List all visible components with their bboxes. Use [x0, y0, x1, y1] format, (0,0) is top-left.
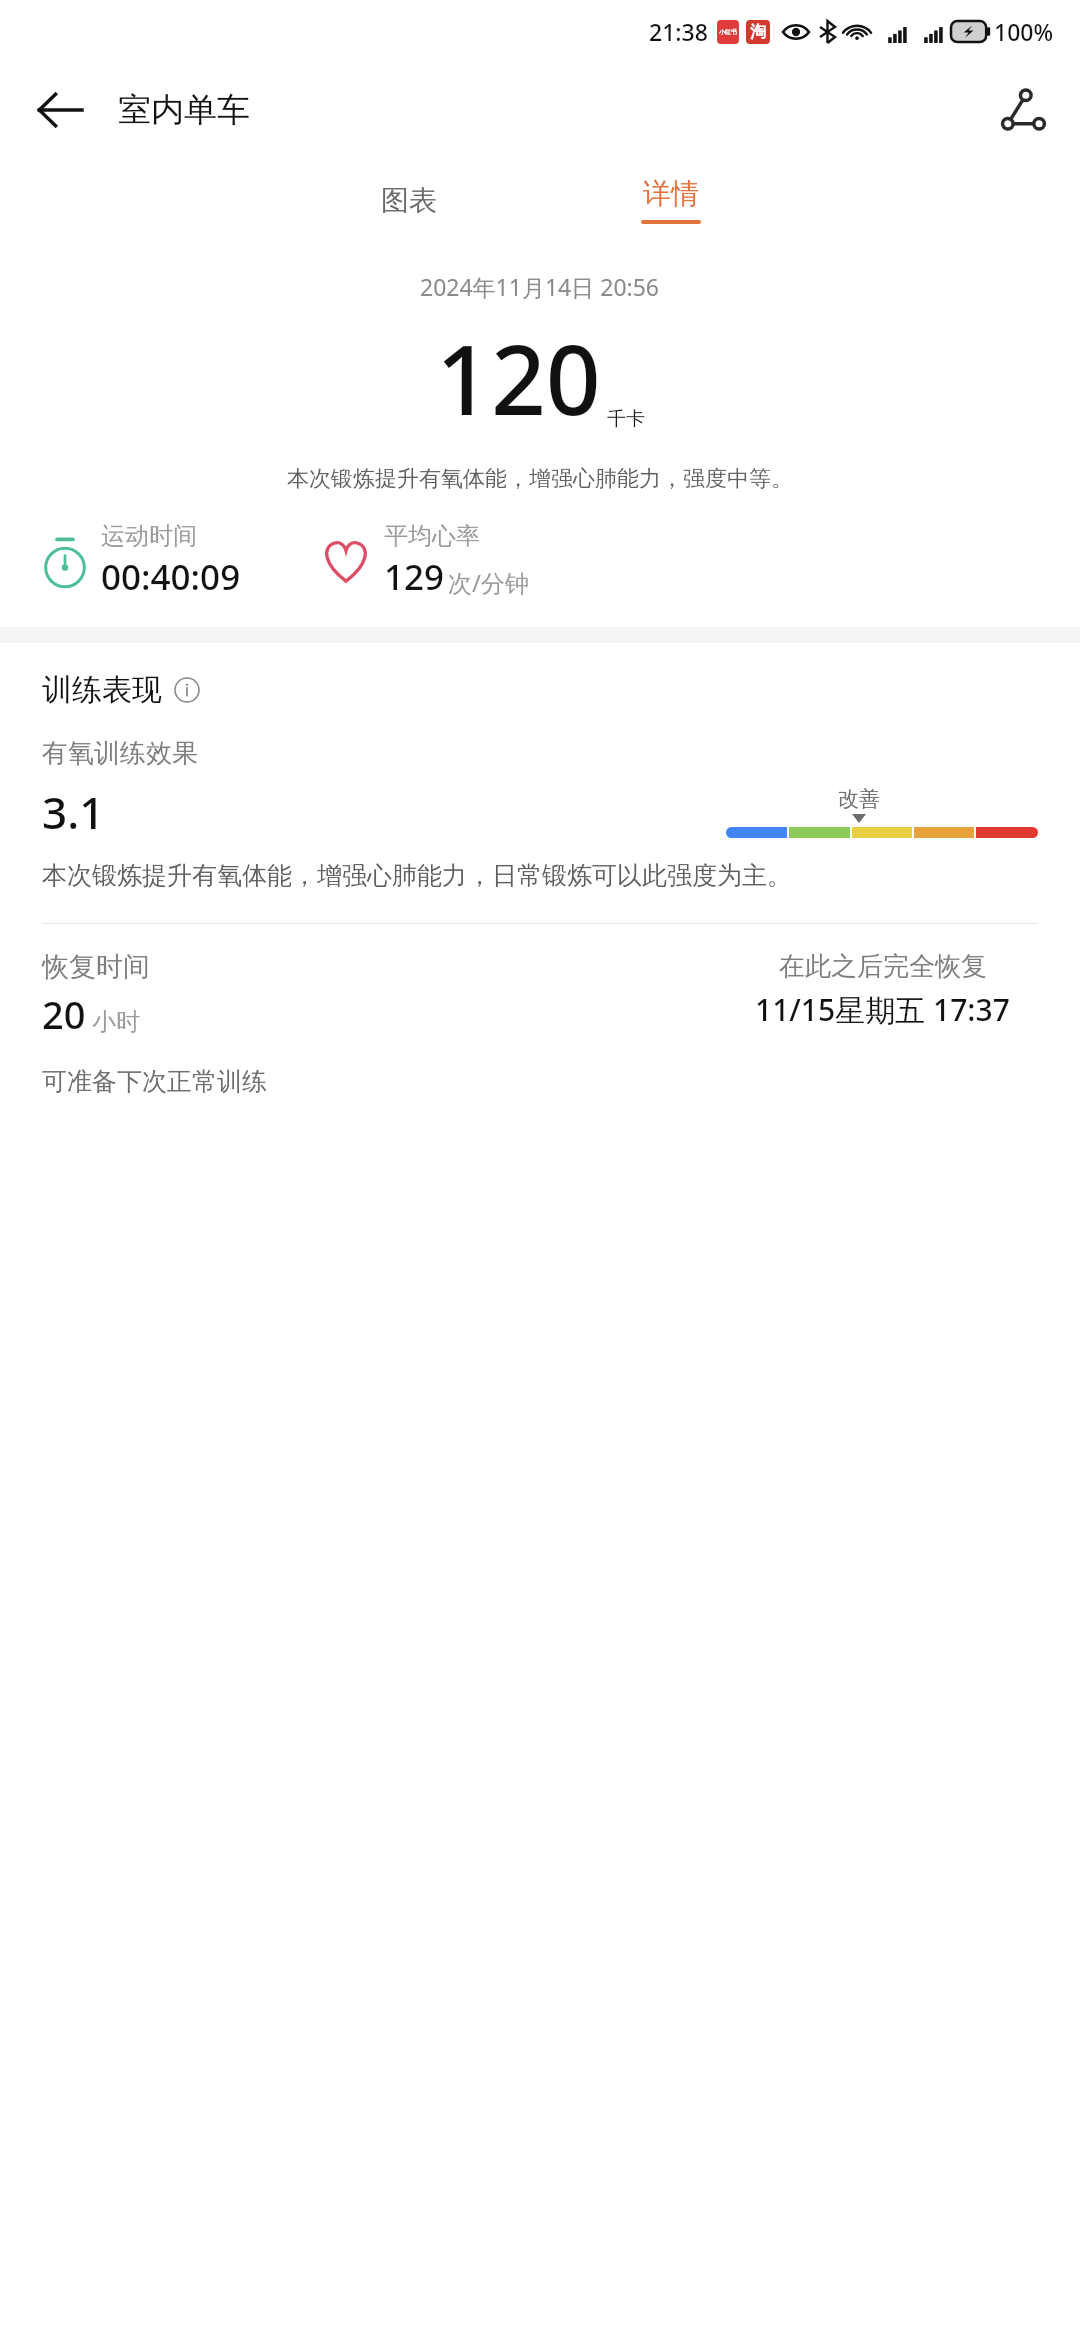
staticText: 千卡: [607, 407, 645, 431]
staticText: 3.1: [42, 782, 105, 842]
staticText: 运动时间: [101, 521, 197, 551]
staticText: 100%: [994, 16, 1054, 47]
staticText: 21:38: [649, 16, 708, 47]
staticText: 次/分钟: [448, 566, 529, 599]
staticText: 有氧训练效果: [42, 737, 198, 770]
button[interactable]: Back: [34, 84, 86, 136]
button[interactable]: 详情: [571, 157, 771, 243]
button[interactable]: Share: [994, 81, 1052, 139]
staticText: 00:40:09: [101, 553, 241, 601]
staticText: 小红书: [719, 28, 737, 36]
staticText: 20: [42, 988, 86, 1040]
button[interactable]: 图表: [309, 157, 509, 243]
staticText: 恢复时间: [42, 950, 150, 984]
staticText: 本次锻炼提升有氧体能，增强心肺能力，强度中等。: [287, 465, 793, 493]
staticText: 室内单车: [118, 89, 250, 131]
other: Info: [172, 675, 202, 705]
staticText: 平均心率: [384, 521, 480, 551]
staticText: 120: [436, 312, 601, 443]
staticText: 在此之后完全恢复: [779, 950, 987, 983]
staticText: 本次锻炼提升有氧体能，增强心肺能力，日常锻炼可以此强度为主。: [42, 860, 792, 891]
staticText: 129: [384, 553, 445, 601]
staticText: 详情: [643, 176, 699, 211]
staticText: 改善: [838, 786, 880, 812]
staticText: 淘: [750, 22, 766, 42]
staticText: 2024年11月14日 20:56: [420, 271, 660, 302]
staticText: 可准备下次正常训练: [42, 1066, 267, 1097]
staticText: 小时: [92, 1007, 140, 1037]
staticText: 11/15星期五 17:37: [755, 989, 1010, 1030]
button[interactable]: 训练表现: [42, 671, 202, 709]
staticText: 训练表现: [42, 671, 162, 709]
staticText: 图表: [381, 183, 437, 218]
